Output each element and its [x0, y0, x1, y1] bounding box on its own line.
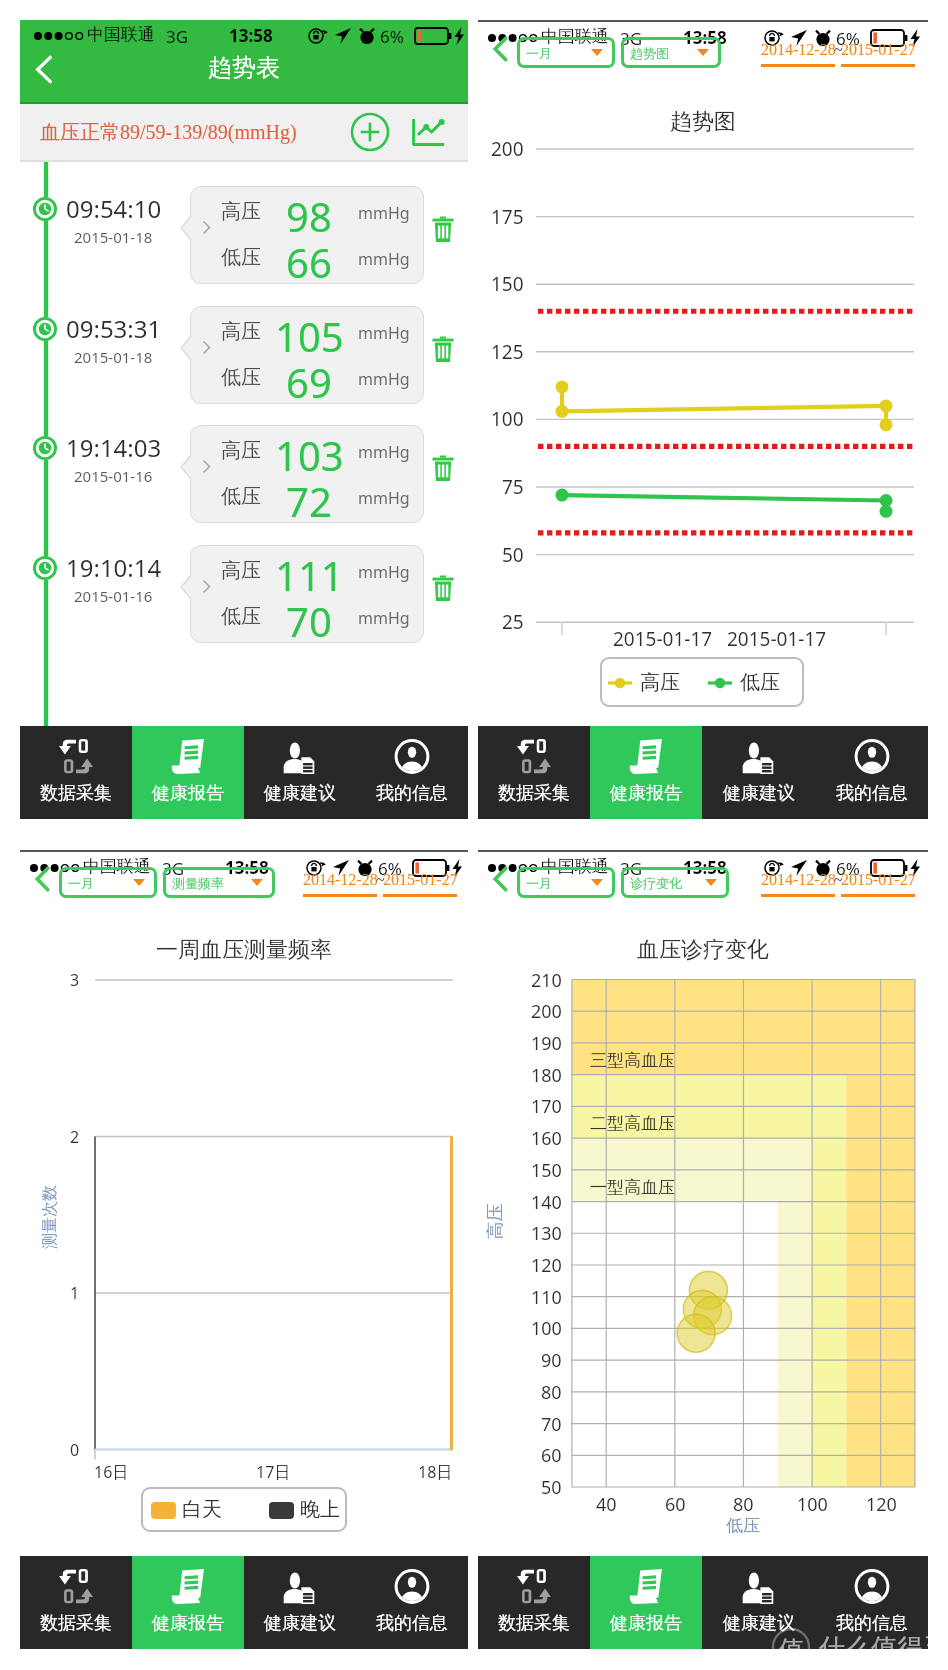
button[interactable]: 数据采集 — [20, 1556, 132, 1649]
staticText: 100 — [797, 1492, 828, 1517]
staticText: 75 — [502, 474, 524, 500]
button[interactable]: 一月 — [59, 867, 157, 898]
button[interactable]: 健康建议 — [244, 726, 356, 819]
staticText: 09:53:31 — [66, 312, 162, 345]
button[interactable]: 高压 — [190, 545, 424, 643]
button[interactable]: 2014-12-28 — [760, 871, 918, 901]
staticText: 健康报告 — [610, 782, 682, 805]
button[interactable]: Delete — [432, 575, 454, 601]
staticText: 高压 — [221, 199, 261, 224]
button[interactable]: 健康报告 — [590, 1556, 702, 1649]
staticText: mmHg — [358, 248, 410, 270]
button[interactable]: Delete — [432, 455, 454, 481]
other: Back — [35, 56, 53, 83]
button[interactable]: 健康建议 — [702, 1556, 815, 1649]
button[interactable]: 高压 — [190, 186, 424, 284]
button[interactable]: Delete — [432, 216, 454, 242]
staticText: 2015-01-16 — [74, 586, 153, 606]
staticText: ~ — [376, 871, 385, 889]
staticText: 0 — [70, 1439, 80, 1461]
staticText: 数据采集 — [40, 782, 112, 805]
button[interactable]: 健康报告 — [132, 1556, 244, 1649]
staticText: 160 — [531, 1126, 562, 1151]
staticText: 健康报告 — [610, 1612, 682, 1635]
staticText: 1 — [70, 1282, 80, 1304]
staticText: 健康建议 — [264, 1612, 336, 1635]
button[interactable]: 白天 — [141, 1487, 347, 1532]
staticText: 一月 — [526, 45, 552, 61]
button[interactable]: 我的信息 — [815, 1556, 928, 1649]
staticText: 健康建议 — [264, 782, 336, 805]
button[interactable]: Back — [26, 860, 62, 898]
button[interactable]: Back — [484, 30, 520, 68]
staticText: 09:54:10 — [66, 192, 162, 225]
button[interactable]: 健康报告 — [132, 726, 244, 819]
staticText: 6% — [836, 857, 860, 880]
staticText: 测量次数 — [40, 1185, 60, 1249]
staticText: 低压 — [221, 245, 261, 270]
button[interactable]: 我的信息 — [356, 1556, 468, 1649]
button[interactable]: Delete — [432, 336, 454, 362]
staticText: 120 — [866, 1492, 897, 1517]
button[interactable]: 2014-12-28 — [302, 871, 460, 901]
staticText: 低压 — [221, 484, 261, 509]
staticText: 2014-12-28 — [761, 41, 835, 59]
staticText: 高压 — [640, 670, 680, 695]
staticText: 25 — [502, 609, 524, 635]
staticText: 一周血压测量频率 — [156, 936, 332, 964]
staticText: 19:14:03 — [66, 431, 162, 464]
button[interactable]: 数据采集 — [20, 726, 132, 819]
staticText: 我的信息 — [836, 782, 908, 805]
button[interactable]: 一月 — [517, 867, 615, 898]
staticText: 2014-12-28 — [761, 871, 835, 889]
button[interactable]: 我的信息 — [815, 726, 928, 819]
button[interactable]: 高压 — [600, 657, 804, 707]
button[interactable]: Add record — [350, 112, 390, 152]
staticText: 白天 — [182, 1497, 222, 1522]
staticText: mmHg — [358, 561, 410, 583]
staticText: 60 — [665, 1492, 686, 1517]
staticText: 中国联通 — [541, 856, 609, 877]
staticText: 2015-01-17 — [613, 626, 713, 652]
button[interactable]: 高压 — [190, 425, 424, 523]
button[interactable]: 趋势图 — [621, 37, 721, 68]
staticText: 2015-01-18 — [74, 227, 153, 247]
staticText: 70 — [286, 594, 332, 640]
staticText: ~ — [834, 871, 843, 889]
staticText: 中国联通 — [83, 856, 151, 877]
staticText: 3 — [70, 969, 80, 991]
button[interactable]: 高压 — [190, 306, 424, 404]
staticText: 190 — [531, 1031, 562, 1056]
staticText: 13:58 — [229, 24, 273, 47]
staticText: 170 — [531, 1094, 562, 1119]
button[interactable]: 数据采集 — [478, 1556, 590, 1649]
staticText: 6% — [378, 857, 402, 880]
staticText: 100 — [491, 406, 524, 432]
staticText: 6% — [380, 25, 404, 48]
button[interactable]: 健康报告 — [590, 726, 702, 819]
button[interactable]: 健康建议 — [244, 1556, 356, 1649]
staticText: mmHg — [358, 607, 410, 629]
button[interactable]: 2014-12-28 — [760, 41, 918, 71]
button[interactable]: 我的信息 — [356, 726, 468, 819]
staticText: 高压 — [221, 319, 261, 344]
staticText: 150 — [491, 271, 524, 297]
button[interactable]: Back — [29, 51, 69, 93]
staticText: 50 — [502, 542, 524, 568]
staticText: 200 — [491, 136, 524, 162]
staticText: 111 — [275, 548, 344, 594]
staticText: 3G — [162, 857, 185, 880]
button[interactable]: 诊疗变化 — [621, 867, 729, 898]
button[interactable]: Chart view — [410, 114, 446, 150]
button[interactable]: 数据采集 — [478, 726, 590, 819]
staticText: 三型高血压 — [590, 1050, 675, 1071]
button[interactable]: 测量频率 — [163, 867, 275, 898]
staticText: 150 — [531, 1158, 562, 1183]
button[interactable]: Back — [484, 860, 520, 898]
staticText: 103 — [275, 428, 344, 474]
button[interactable]: 一月 — [517, 37, 615, 68]
button[interactable]: 健康建议 — [702, 726, 815, 819]
staticText: 13:58 — [683, 26, 727, 49]
staticText: 100 — [531, 1316, 562, 1341]
staticText: 60 — [541, 1443, 562, 1468]
